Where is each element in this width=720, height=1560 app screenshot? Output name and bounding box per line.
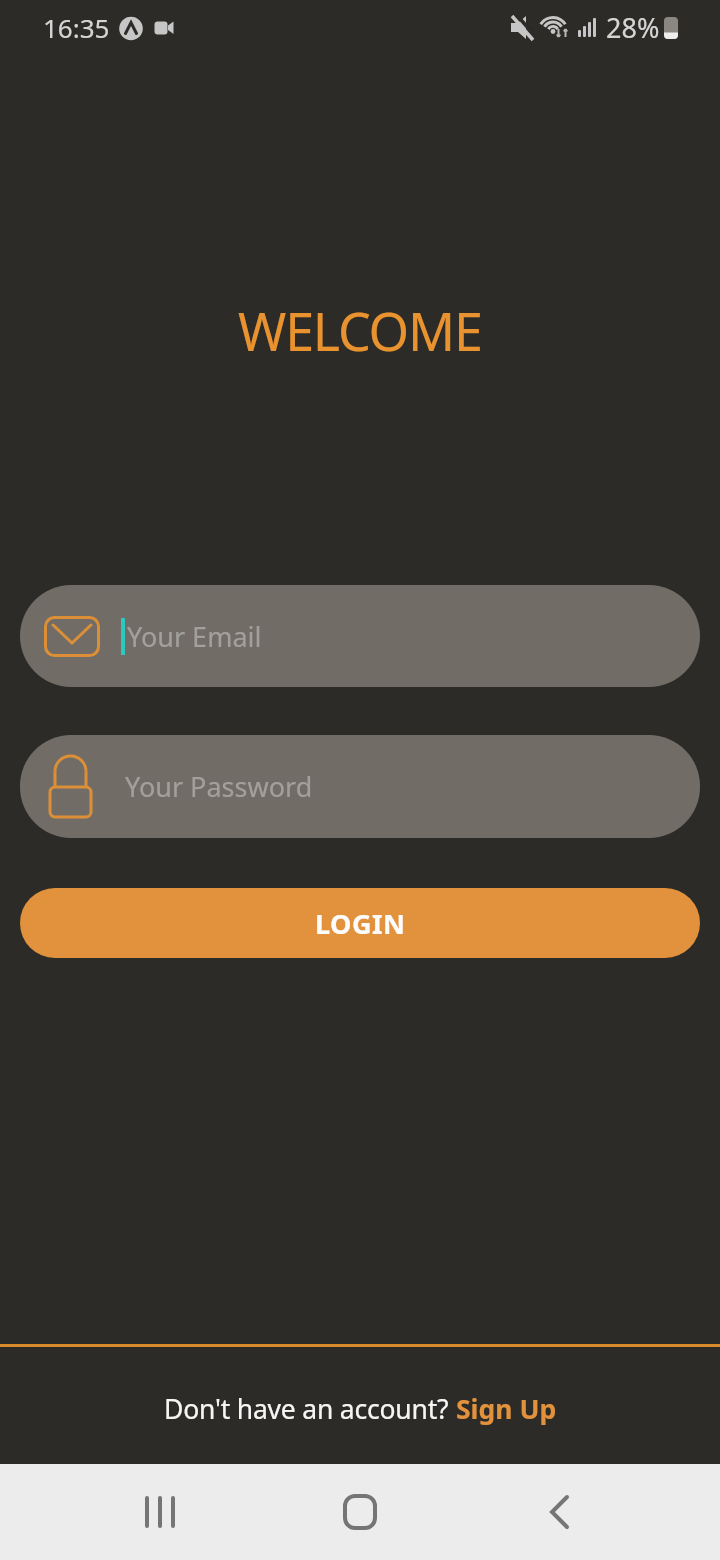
staticText: 28% — [606, 9, 660, 46]
button[interactable] — [310, 1464, 410, 1560]
staticText: Your Email — [127, 618, 262, 655]
staticText: LOGIN — [315, 905, 406, 942]
staticText: Don't have an account? — [164, 1391, 456, 1427]
button[interactable]: Your Email — [20, 585, 700, 687]
button[interactable]: Sign Up — [456, 1391, 557, 1427]
staticText: Your Password — [125, 768, 313, 805]
button[interactable] — [110, 1464, 210, 1560]
button[interactable]: LOGIN — [20, 888, 700, 958]
button[interactable]: Your Password — [20, 735, 700, 838]
staticText: Sign Up — [456, 1391, 557, 1427]
staticText: WELCOME — [238, 295, 482, 366]
staticText: 16:35 — [43, 10, 110, 45]
button[interactable] — [510, 1464, 610, 1560]
